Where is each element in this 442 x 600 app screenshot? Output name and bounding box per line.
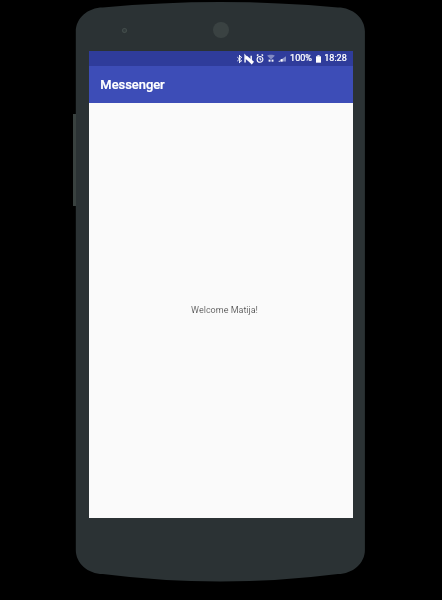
button[interactable]: Messenger (89, 66, 353, 103)
other: Alarm set (256, 54, 264, 63)
button[interactable]: Welcome Matija! (89, 103, 353, 518)
other: Wi-Fi (267, 54, 275, 62)
staticText: 18:28 (324, 53, 347, 64)
staticText: Messenger (100, 77, 165, 92)
other: Mobile signal (278, 54, 286, 62)
other: Battery full (316, 53, 321, 64)
other: NFC off (244, 55, 253, 63)
staticText: Welcome Matija! (191, 305, 258, 316)
other: Bluetooth on (237, 55, 242, 63)
staticText: 100% (290, 53, 312, 64)
